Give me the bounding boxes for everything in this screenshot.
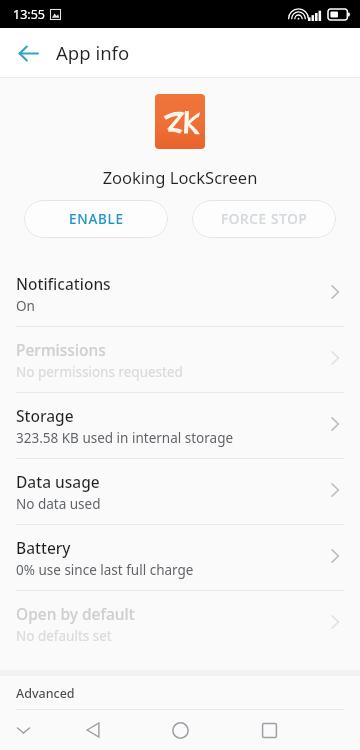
button[interactable]: ENABLE: [24, 200, 168, 238]
staticText: No permissions requested: [16, 363, 183, 381]
button[interactable]: Battery: [0, 525, 360, 590]
button[interactable]: Storage: [0, 393, 360, 458]
button[interactable]: Open by default: [0, 591, 360, 656]
button[interactable]: Recent apps: [250, 711, 288, 749]
button[interactable]: Permissions: [0, 327, 360, 392]
staticText: 0% use since last full charge: [16, 561, 194, 579]
button[interactable]: Back: [8, 33, 48, 73]
staticText: App info: [56, 40, 130, 65]
staticText: 323.58 KB used in internal storage: [16, 429, 234, 447]
staticText: Open by default: [16, 603, 135, 624]
staticText: On: [16, 297, 35, 315]
staticText: Data usage: [16, 471, 100, 492]
staticText: 13:55: [13, 6, 45, 23]
staticText: Storage: [16, 405, 74, 426]
button[interactable]: Back: [74, 711, 112, 749]
staticText: ENABLE: [69, 210, 124, 228]
button[interactable]: Home: [160, 710, 200, 750]
staticText: No data used: [16, 495, 101, 513]
button[interactable]: Advanced: [0, 676, 360, 710]
staticText: Zooking LockScreen: [0, 166, 360, 188]
staticText: Battery: [16, 537, 71, 558]
staticText: Notifications: [16, 273, 111, 294]
staticText: Permissions: [16, 339, 106, 360]
button[interactable]: Notifications: [0, 261, 360, 326]
staticText: FORCE STOP: [221, 210, 308, 228]
button[interactable]: Data usage: [0, 459, 360, 524]
button[interactable]: FORCE STOP: [192, 200, 336, 238]
button[interactable]: Hide: [6, 713, 40, 747]
staticText: Advanced: [16, 685, 75, 702]
staticText: No defaults set: [16, 627, 112, 645]
